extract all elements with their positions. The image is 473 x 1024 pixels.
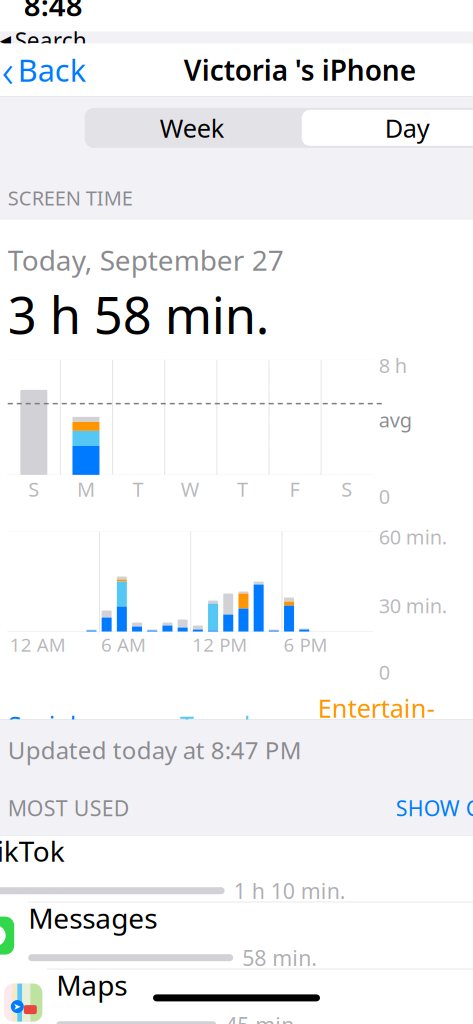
staticText: S bbox=[28, 476, 39, 502]
staticText: Entertainment bbox=[318, 691, 435, 758]
staticText: Back bbox=[18, 49, 86, 90]
button[interactable]: Week bbox=[85, 108, 473, 148]
staticText: 3 h 58 min. bbox=[8, 281, 270, 348]
staticText: Search bbox=[15, 25, 87, 55]
staticText: 6 AM bbox=[101, 632, 146, 657]
staticText: Day bbox=[385, 111, 430, 145]
staticText: Week bbox=[160, 111, 225, 145]
staticText: Maps bbox=[56, 966, 127, 1003]
staticText: Victoria 's iPhone bbox=[184, 51, 416, 88]
staticText: Messages bbox=[28, 899, 157, 936]
staticText: 12 PM bbox=[192, 632, 247, 657]
staticText: Travel bbox=[180, 708, 251, 742]
staticText: S bbox=[341, 476, 352, 502]
staticText: 6 PM bbox=[283, 632, 327, 657]
staticText: TikTok bbox=[0, 832, 65, 869]
staticText: 45 min. bbox=[180, 745, 269, 778]
staticText: ➤ bbox=[13, 1001, 21, 1012]
staticText: ‹ bbox=[2, 40, 14, 100]
staticText: 2 h 25 min. bbox=[8, 745, 141, 778]
staticText: 8:48 bbox=[24, 0, 83, 24]
staticText: 8 h bbox=[379, 352, 407, 378]
staticText: 45 min. bbox=[225, 1010, 300, 1024]
staticText: 60 min. bbox=[379, 523, 447, 550]
staticText: Social bbox=[8, 708, 77, 742]
staticText: avg bbox=[379, 406, 412, 433]
staticText: 0 bbox=[379, 483, 390, 510]
staticText: Updated today at 8:47 PM bbox=[8, 734, 302, 766]
button[interactable]: SHOW CATEGORIES bbox=[396, 790, 473, 826]
staticText: Today, September 27 bbox=[8, 241, 284, 279]
button[interactable]: Messages bbox=[0, 903, 473, 970]
staticText: 58 min. bbox=[242, 943, 317, 972]
staticText: SCREEN TIME bbox=[8, 184, 133, 211]
staticText: M bbox=[77, 476, 95, 502]
staticText: 0 bbox=[379, 659, 390, 685]
staticText: 30 min. bbox=[379, 592, 447, 619]
button[interactable]: ♪ bbox=[0, 836, 473, 903]
staticText: T bbox=[133, 476, 144, 502]
staticText: F bbox=[289, 476, 299, 502]
staticText: 12 AM bbox=[10, 632, 66, 657]
staticText: MOST USED bbox=[8, 794, 130, 822]
staticText: W bbox=[181, 476, 200, 502]
staticText: ◀ bbox=[0, 32, 11, 49]
staticText: SHOW CATEGORIES bbox=[396, 794, 473, 822]
button[interactable]: ➤ bbox=[0, 970, 473, 1024]
button[interactable]: ‹ bbox=[0, 44, 94, 96]
staticText: T bbox=[237, 476, 248, 502]
staticText: 1 h 10 min. bbox=[234, 876, 346, 905]
